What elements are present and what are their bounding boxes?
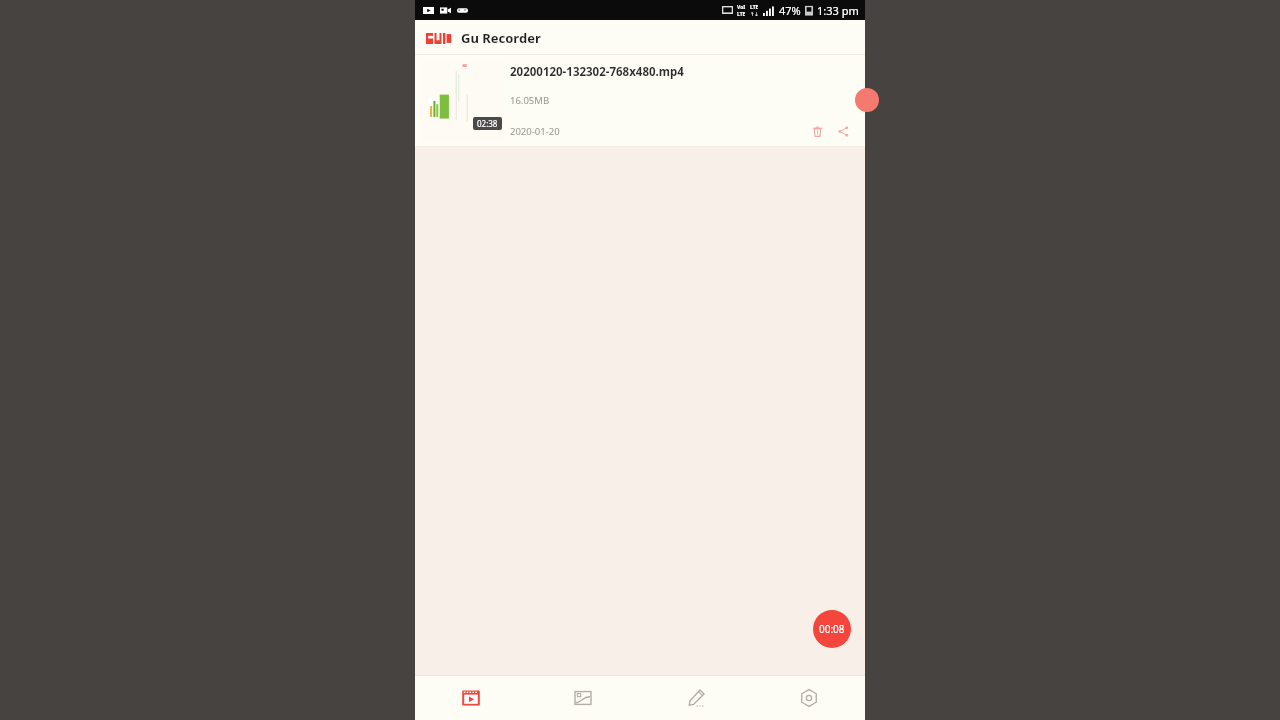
button[interactable]: Recording timer — [813, 610, 851, 648]
staticText: 47% — [779, 3, 801, 18]
staticText: 20200120-132302-768x480.mp4 — [510, 64, 684, 80]
staticText: VoI — [737, 4, 746, 11]
button[interactable]: Settings — [752, 676, 865, 720]
staticText: 1:33 pm — [817, 3, 859, 18]
staticText: LTE — [750, 4, 759, 11]
button[interactable]: Delete — [807, 121, 827, 141]
staticText: Gu Recorder — [461, 29, 541, 47]
button[interactable]: Share — [833, 121, 853, 141]
button[interactable]: Videos — [415, 676, 527, 720]
staticText: 00:08 — [819, 622, 845, 636]
staticText: ↑↓ — [750, 11, 759, 17]
staticText: LTE — [737, 11, 746, 18]
button[interactable]: 02:38 — [415, 55, 865, 147]
button[interactable]: Edit — [639, 676, 752, 720]
button[interactable]: Images — [527, 676, 639, 720]
staticText: 16.05MB — [510, 94, 550, 107]
staticText: 2020-01-20 — [510, 125, 560, 138]
staticText: 02:38 — [477, 118, 498, 129]
